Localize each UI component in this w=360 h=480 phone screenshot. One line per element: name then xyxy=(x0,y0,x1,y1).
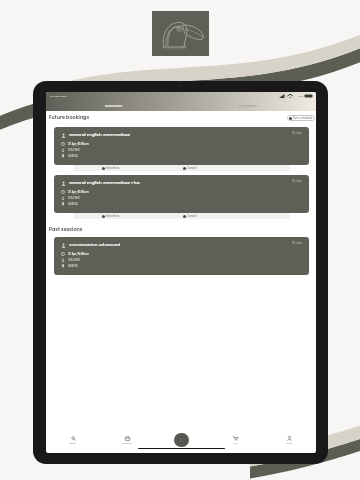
button[interactable]: Cancel xyxy=(183,165,197,171)
staticText: 30 mins xyxy=(292,179,302,183)
staticText: Conversation Advanced xyxy=(69,242,121,248)
staticText: General English Intermediate Plus xyxy=(69,180,140,186)
staticText: 27 Apr, 10:00am xyxy=(68,142,89,146)
button[interactable]: Sync schedule xyxy=(287,115,315,121)
staticText: Future bookings xyxy=(49,114,90,121)
staticText: Directions xyxy=(106,166,120,170)
staticText: Cancel xyxy=(187,166,197,170)
button[interactable]: Search xyxy=(46,433,100,447)
staticText: Cancel xyxy=(187,214,197,218)
staticText: 100% xyxy=(298,94,304,97)
staticText: TEACHER xyxy=(68,148,80,152)
staticText: Cart xyxy=(233,442,238,445)
button[interactable]: Bookings xyxy=(100,433,154,447)
staticText: Profile xyxy=(286,442,293,445)
staticText: ADRESS xyxy=(68,202,78,206)
staticText: Search xyxy=(69,442,77,445)
staticText: ADRESS xyxy=(68,154,78,158)
staticText: General English Intermediate xyxy=(69,132,131,138)
staticText: BOOKINGS xyxy=(105,104,123,108)
staticText: ADRESS xyxy=(68,264,78,268)
button[interactable]: BOOKINGS xyxy=(46,101,181,111)
button[interactable]: Directions xyxy=(102,165,120,171)
staticText: TEACHER xyxy=(68,258,80,262)
staticText: Sync schedule xyxy=(293,116,313,120)
button[interactable]: Directions xyxy=(102,213,120,219)
staticText: Bookings xyxy=(122,442,132,445)
button[interactable]: FAVORITES xyxy=(181,101,316,111)
staticText: Past sessions xyxy=(49,226,83,233)
button[interactable]: Cart xyxy=(208,433,262,447)
staticText: 27 Apr, 10:00am xyxy=(68,190,89,194)
staticText: 30 mins xyxy=(292,131,302,135)
staticText: 30 mins xyxy=(292,241,302,245)
button[interactable]: General English Intermediate xyxy=(54,127,309,165)
button[interactable]: Conversation Advanced xyxy=(54,237,309,275)
staticText: Directions xyxy=(106,214,120,218)
staticText: TEACHER xyxy=(68,196,80,200)
button[interactable]: Profile xyxy=(262,433,316,447)
staticText: 9:41 Mon Apr 11 xyxy=(50,94,67,97)
button[interactable]: Add booking xyxy=(174,433,189,447)
staticText: 27 Apr, 10:00am xyxy=(68,252,89,256)
staticText: FAVORITES xyxy=(239,104,258,108)
button[interactable]: Cancel xyxy=(183,213,197,219)
button[interactable]: General English Intermediate Plus xyxy=(54,175,309,213)
